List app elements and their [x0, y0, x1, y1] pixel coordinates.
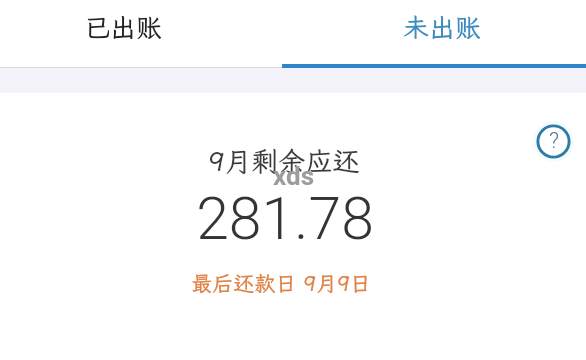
button[interactable]: 已出账	[0, 0, 282, 66]
staticText: 已出账	[84, 10, 163, 44]
staticText: 未出账	[403, 10, 482, 44]
staticText: xds	[273, 161, 315, 191]
button[interactable]: 未出账	[282, 0, 586, 66]
staticText: 最后还款日 9月9日	[191, 269, 371, 297]
staticText: 281.78	[196, 184, 374, 253]
button[interactable]: Help	[531, 119, 576, 164]
staticText: ?	[549, 128, 559, 154]
staticText: 9月剩余应还	[208, 143, 360, 179]
